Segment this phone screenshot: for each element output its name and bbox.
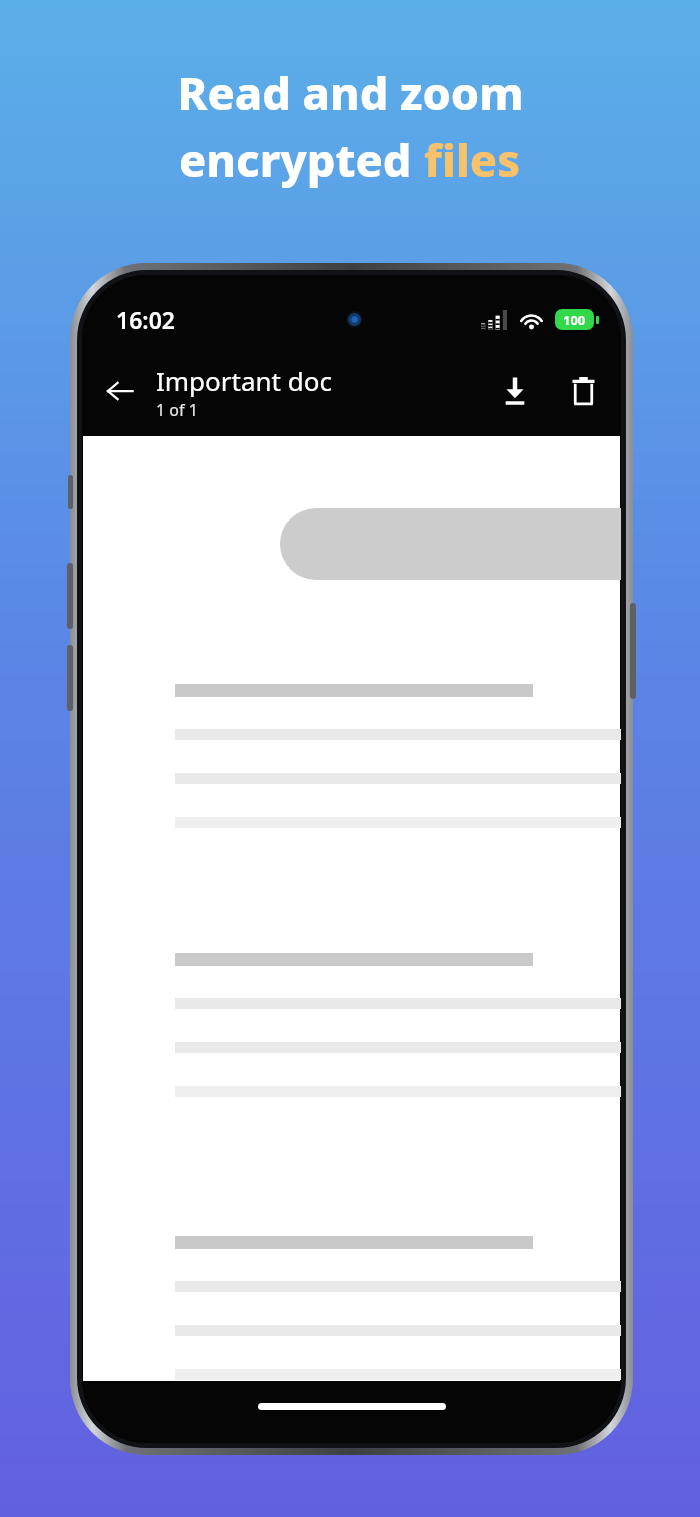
staticText: encrypted [179,129,424,190]
button[interactable]: Delete [557,365,609,417]
staticText: Read and zoom [177,62,524,123]
staticText: Important doc [156,363,332,398]
staticText: files [424,129,521,190]
button[interactable]: Download [489,365,541,417]
button[interactable]: Back [94,365,146,417]
staticText: 16:02 [116,304,175,335]
staticText: 1 of 1 [156,399,198,419]
button[interactable] [83,436,620,1381]
staticText: 100 [563,311,586,329]
